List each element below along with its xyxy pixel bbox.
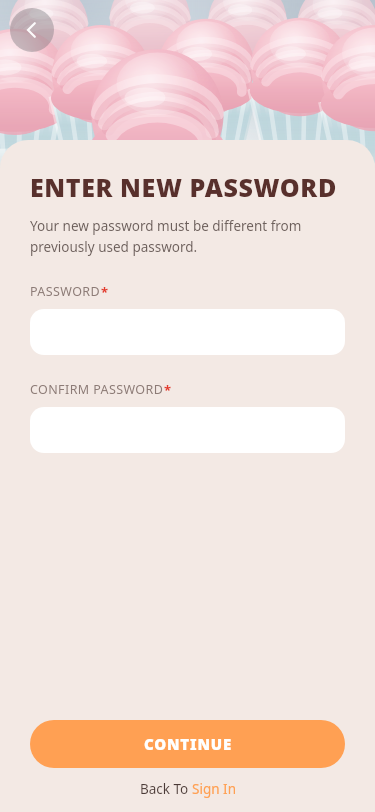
button[interactable]: CONTINUE bbox=[30, 720, 345, 768]
staticText: CONFIRM PASSWORD bbox=[30, 381, 164, 398]
staticText: CONTINUE bbox=[144, 734, 232, 754]
staticText: * bbox=[164, 381, 172, 399]
button[interactable]: Back bbox=[10, 8, 54, 52]
staticText: * bbox=[101, 283, 109, 301]
staticText: ENTER NEW PASSWORD bbox=[30, 170, 337, 204]
staticText: Your new password must be different from… bbox=[30, 217, 345, 256]
staticText: Sign In bbox=[192, 780, 236, 798]
button[interactable]: Back To bbox=[140, 780, 236, 798]
staticText: PASSWORD bbox=[30, 283, 101, 300]
staticText: Back To bbox=[140, 780, 192, 798]
